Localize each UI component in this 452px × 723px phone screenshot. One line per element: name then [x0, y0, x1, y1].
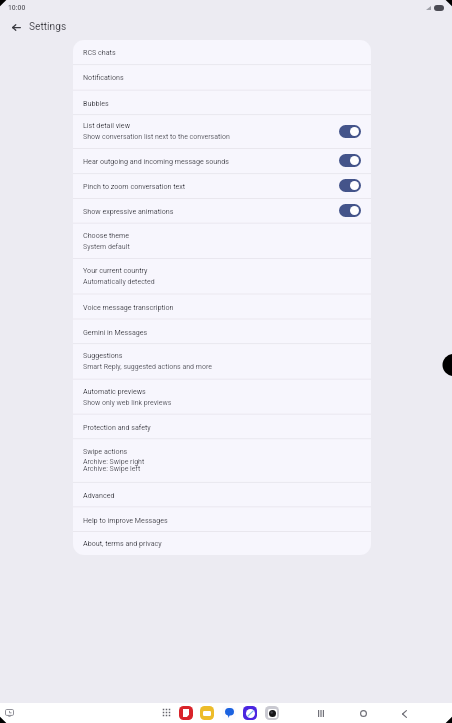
button[interactable]: About, terms and privacy: [73, 531, 371, 555]
button[interactable]: Toggle: [339, 204, 361, 217]
staticText: Your current country: [83, 266, 148, 274]
button[interactable]: Help to improve Messages: [73, 507, 371, 532]
staticText: Swipe actions: [83, 447, 128, 455]
staticText: Automatically detected: [83, 278, 155, 286]
staticText: Show conversation list next to the conve…: [83, 133, 230, 141]
button[interactable]: Hear outgoing and incoming message sound…: [73, 148, 371, 173]
staticText: Bubbles: [83, 99, 109, 107]
staticText: 10:00: [8, 4, 26, 12]
button[interactable]: Recents: [312, 705, 329, 722]
button[interactable]: Your current country: [73, 258, 371, 294]
staticText: Show expressive animations: [83, 207, 174, 215]
staticText: Advanced: [83, 491, 115, 499]
button[interactable]: Gemini in Messages: [73, 319, 371, 344]
staticText: Pinch to zoom conversation text: [83, 182, 186, 190]
staticText: Protection and safety: [83, 423, 151, 431]
staticText: Choose theme: [83, 231, 130, 239]
button[interactable]: Pinch to zoom conversation text: [73, 173, 371, 198]
button[interactable]: Protection and safety: [73, 414, 371, 439]
staticText: Gemini in Messages: [83, 328, 148, 336]
staticText: Show only web link previews: [83, 399, 172, 407]
button[interactable]: Back: [396, 705, 413, 722]
button[interactable]: Choose theme: [73, 223, 371, 258]
staticText: System default: [83, 243, 130, 251]
button[interactable]: Camera app: [265, 706, 279, 720]
button[interactable]: Docs app: [179, 706, 193, 720]
button[interactable]: RCS chats: [73, 40, 371, 64]
button[interactable]: Home: [355, 705, 372, 722]
button[interactable]: Swipe actions: [73, 438, 371, 482]
staticText: Archive: Swipe right Archive: Swipe left: [83, 458, 145, 473]
staticText: Settings: [29, 21, 67, 33]
button[interactable]: Messages app: [222, 706, 236, 720]
button[interactable]: List detail view: [73, 114, 371, 148]
staticText: Help to improve Messages: [83, 516, 168, 524]
staticText: Suggestions: [83, 351, 123, 359]
button[interactable]: Input method: [1, 704, 18, 721]
button[interactable]: Back: [6, 17, 26, 37]
button[interactable]: Voice message transcription: [73, 294, 371, 319]
staticText: Notifications: [83, 73, 124, 81]
button[interactable]: Automatic previews: [73, 379, 371, 414]
staticText: List detail view: [83, 121, 130, 129]
button[interactable]: Toggle: [339, 125, 361, 138]
button[interactable]: All apps: [162, 708, 171, 717]
button[interactable]: Show expressive animations: [73, 198, 371, 223]
button[interactable]: Suggestions: [73, 343, 371, 378]
button[interactable]: Toggle: [339, 179, 361, 192]
button[interactable]: Bubbles: [73, 90, 371, 115]
button[interactable]: Browser app: [243, 706, 257, 720]
staticText: Smart Reply, suggested actions and more: [83, 363, 212, 371]
staticText: About, terms and privacy: [83, 539, 162, 547]
button[interactable]: Toggle: [339, 154, 361, 167]
button[interactable]: Files app: [200, 706, 214, 720]
staticText: Hear outgoing and incoming message sound…: [83, 157, 229, 165]
staticText: RCS chats: [83, 48, 116, 56]
button[interactable]: Advanced: [73, 482, 371, 507]
staticText: Voice message transcription: [83, 303, 174, 311]
button[interactable]: Notifications: [73, 64, 371, 89]
staticText: Automatic previews: [83, 387, 146, 395]
